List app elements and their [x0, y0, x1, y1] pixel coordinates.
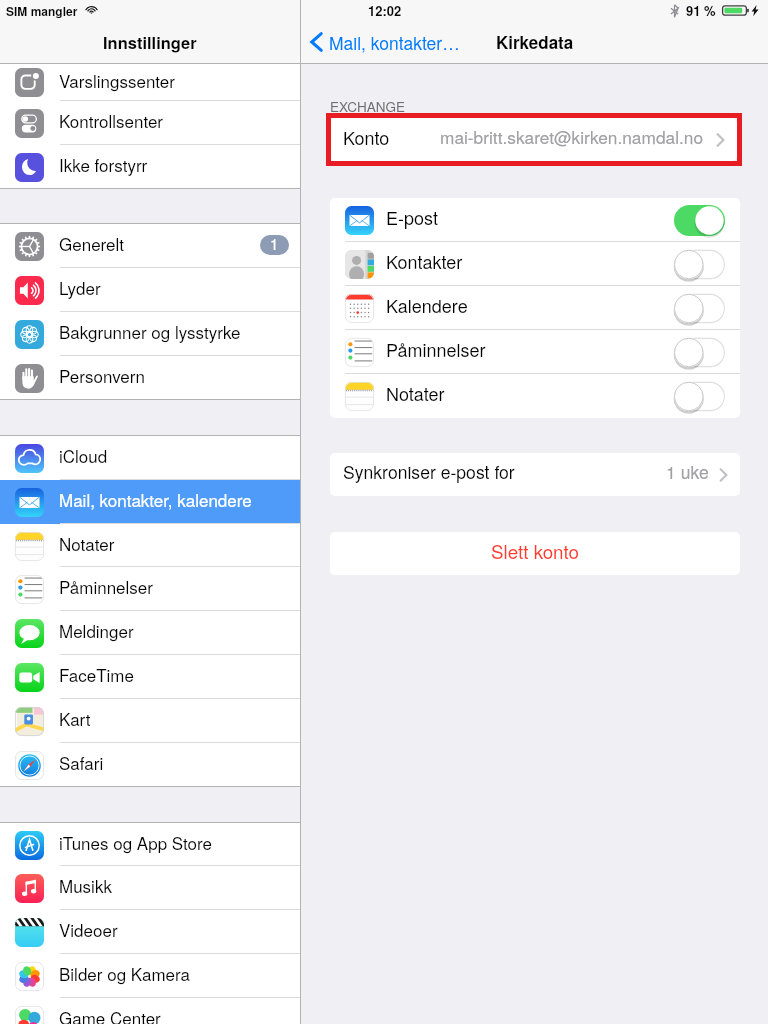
staticText: Notater	[386, 380, 674, 406]
staticText: Innstillinger	[103, 30, 197, 54]
button[interactable]: Konto	[330, 118, 737, 161]
button[interactable]: Kontakter	[330, 242, 740, 286]
button[interactable]: Bilder og Kamera	[0, 954, 300, 998]
staticText: 12:02	[368, 1, 402, 20]
button[interactable]: Påminnelser	[0, 567, 300, 611]
button[interactable]: Kalendere	[330, 286, 740, 330]
staticText: Game Center	[59, 1005, 289, 1024]
staticText: E-post	[386, 204, 674, 230]
button[interactable]: Mail, kontakter, kalendere	[0, 480, 300, 524]
staticText: iCloud	[59, 443, 289, 467]
button[interactable]: Påminnelser off	[674, 337, 725, 368]
button[interactable]: Musikk	[0, 866, 300, 910]
button[interactable]: Game Center	[0, 998, 300, 1024]
staticText: Musikk	[59, 873, 289, 897]
button[interactable]: Lyder	[0, 268, 300, 312]
button[interactable]: Varslingssenter	[0, 64, 300, 101]
button[interactable]: Kart	[0, 699, 300, 743]
button[interactable]: Slett konto	[330, 532, 740, 575]
staticText: Påminnelser	[386, 336, 674, 362]
button[interactable]: Påminnelser	[330, 330, 740, 374]
staticText: Personvern	[59, 363, 289, 387]
button[interactable]: Notater	[330, 374, 740, 418]
staticText: Mail, kontakter…	[329, 30, 460, 55]
button[interactable]: E-post	[330, 198, 740, 242]
button[interactable]: FaceTime	[0, 655, 300, 699]
button[interactable]: Safari	[0, 743, 300, 787]
button[interactable]: Meldinger	[0, 611, 300, 655]
staticText: Varslingssenter	[59, 68, 289, 92]
staticText: Kalendere	[386, 292, 674, 318]
staticText: Konto	[343, 124, 390, 150]
staticText: Generelt	[59, 231, 260, 255]
staticText: 91 %	[686, 1, 716, 20]
staticText: SIM mangler	[6, 2, 78, 19]
staticText: Synkroniser e-post for	[343, 459, 515, 484]
staticText: Kontakter	[386, 248, 674, 274]
button[interactable]: Kalendere off	[674, 293, 725, 324]
button[interactable]: Mail, kontakter…	[309, 21, 460, 63]
staticText: Meldinger	[59, 618, 289, 642]
button[interactable]: Synkroniser e-post for	[330, 453, 740, 496]
staticText: Notater	[59, 531, 289, 555]
button[interactable]: Videoer	[0, 910, 300, 954]
staticText: Lyder	[59, 275, 289, 299]
staticText: 1 uke	[666, 459, 709, 484]
staticText: Kart	[59, 706, 289, 730]
button[interactable]: Kontakter off	[674, 249, 725, 280]
staticText: Bilder og Kamera	[59, 961, 289, 985]
staticText: FaceTime	[59, 662, 289, 686]
staticText: Slett konto	[491, 537, 580, 564]
staticText: mai-britt.skaret@kirken.namdal.no	[440, 124, 704, 149]
button[interactable]: Ikke forstyrr	[0, 145, 300, 189]
staticText: Bakgrunner og lysstyrke	[59, 319, 289, 343]
button[interactable]: iCloud	[0, 436, 300, 480]
staticText: Ikke forstyrr	[59, 152, 289, 176]
button[interactable]: Notater off	[674, 381, 725, 412]
staticText: Påminnelser	[59, 574, 289, 598]
staticText: EXCHANGE	[330, 97, 405, 116]
button[interactable]: E-post on	[674, 205, 725, 236]
staticText: Kontrollsenter	[59, 108, 289, 132]
staticText: 1	[270, 235, 279, 253]
button[interactable]: Kontrollsenter	[0, 101, 300, 145]
staticText: iTunes og App Store	[59, 830, 289, 854]
staticText: Mail, kontakter, kalendere	[59, 487, 289, 511]
button[interactable]: Generelt	[0, 224, 300, 268]
button[interactable]: Personvern	[0, 356, 300, 400]
staticText: Kirkedata	[496, 30, 574, 54]
button[interactable]: iTunes og App Store	[0, 823, 300, 867]
button[interactable]: Bakgrunner og lysstyrke	[0, 312, 300, 356]
staticText: Videoer	[59, 917, 289, 941]
button[interactable]: Notater	[0, 524, 300, 568]
staticText: Safari	[59, 750, 289, 774]
